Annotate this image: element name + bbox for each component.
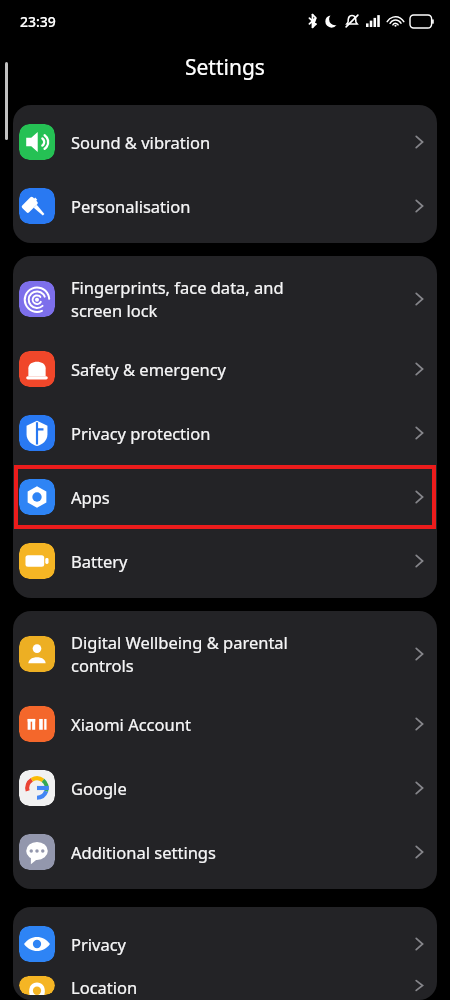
staticText: Apps (71, 486, 409, 508)
button[interactable]: Safety & emergency (13, 337, 437, 401)
button[interactable]: Personalisation (13, 174, 437, 238)
staticText: Settings (185, 53, 265, 82)
button[interactable]: Additional settings (13, 820, 437, 884)
button[interactable]: Google (13, 756, 437, 820)
staticText: Location (71, 976, 409, 995)
button[interactable]: Xiaomi Account (13, 692, 437, 756)
staticText: Privacy protection (71, 422, 409, 444)
staticText: Google (71, 777, 409, 799)
staticText: Fingerprints, face data, and screen lock (71, 276, 409, 322)
button[interactable]: Apps (13, 465, 437, 529)
staticText: Personalisation (71, 195, 409, 217)
button[interactable]: Privacy (13, 912, 437, 976)
staticText: Privacy (71, 933, 409, 955)
button[interactable]: Fingerprints, face data, and screen lock (13, 261, 437, 337)
button[interactable]: Digital Wellbeing & parental controls (13, 616, 437, 692)
staticText: Additional settings (71, 841, 409, 863)
staticText: Xiaomi Account (71, 713, 409, 735)
button[interactable]: Location (13, 976, 437, 995)
staticText: Sound & vibration (71, 131, 409, 153)
staticText: 23:39 (20, 12, 56, 31)
button[interactable]: Sound & vibration (13, 110, 437, 174)
button[interactable]: Privacy protection (13, 401, 437, 465)
button[interactable]: Battery (13, 529, 437, 593)
staticText: Digital Wellbeing & parental controls (71, 631, 409, 677)
staticText: Safety & emergency (71, 358, 409, 380)
staticText: Battery (71, 550, 409, 572)
